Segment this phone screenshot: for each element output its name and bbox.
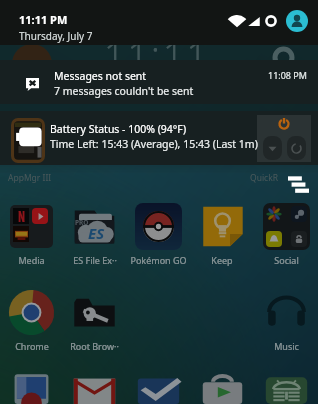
staticText: Thursday, July 7: [19, 29, 93, 43]
button[interactable]: User profile: [286, 10, 308, 32]
button[interactable]: Music: [254, 289, 318, 352]
button[interactable]: [190, 373, 254, 404]
staticText: Time Left: 15:43 (Average), 15:43 (Last …: [50, 137, 258, 151]
button[interactable]: Shut down: [263, 136, 282, 160]
button[interactable]: Restart: [287, 136, 306, 160]
button[interactable]: Keep: [190, 203, 254, 266]
other: Mobile signal: [248, 17, 260, 26]
staticText: ES: [88, 223, 105, 243]
staticText: ES File Ex··: [73, 254, 117, 266]
other: Wi-Fi: [229, 15, 245, 27]
button[interactable]: Messages not sent: [0, 60, 318, 104]
other: Do not disturb: [265, 15, 277, 27]
button[interactable]: Chrome: [0, 289, 63, 352]
staticText: Thu, July 7: [138, 84, 187, 98]
staticText: 11:11 PM: [19, 12, 68, 27]
button[interactable]: [63, 373, 126, 404]
button[interactable]: Social: [254, 203, 318, 266]
button[interactable]: [126, 373, 190, 404]
staticText: Music: [274, 340, 299, 352]
button[interactable]: [254, 373, 318, 404]
staticText: 7 messages couldn't be sent: [54, 84, 194, 98]
staticText: 11:11: [104, 30, 211, 79]
staticText: PRO: [75, 218, 89, 227]
staticText: Pokémon GO: [130, 254, 187, 266]
staticText: Messages not sent: [54, 69, 147, 83]
staticText: AppMgr III: [8, 172, 52, 184]
staticText: QuickR: [250, 172, 278, 184]
staticText: Keep: [211, 254, 233, 266]
staticText: Battery Status - 100% (94°F): [50, 122, 187, 136]
staticText: Media: [18, 254, 45, 266]
button[interactable]: Media: [0, 203, 63, 266]
button[interactable]: Pokémon GO: [126, 203, 190, 266]
staticText: Root Brow··: [70, 340, 119, 352]
staticText: Social: [274, 254, 299, 266]
button[interactable]: Clear all notifications: [288, 176, 309, 193]
button[interactable]: Root Brow··: [63, 289, 126, 352]
button[interactable]: PRO: [63, 203, 126, 266]
other: Power: [278, 118, 290, 130]
staticText: 11:08 PM: [268, 69, 307, 81]
staticText: Chrome: [15, 340, 49, 352]
button[interactable]: [0, 373, 63, 404]
button[interactable]: Battery Status - 100% (94°F): [0, 111, 318, 165]
